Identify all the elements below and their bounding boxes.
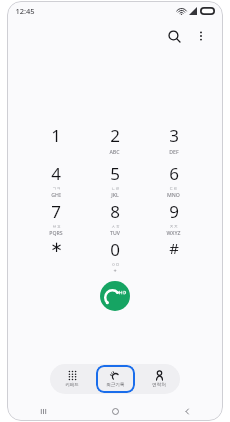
button[interactable]: 7	[27, 199, 85, 237]
staticText: 0	[110, 238, 120, 261]
button[interactable]: #	[144, 237, 203, 275]
button[interactable]: Call	[100, 281, 130, 311]
staticText: 연락처	[152, 382, 166, 388]
button[interactable]: 6	[144, 161, 203, 199]
staticText: DEF	[169, 148, 179, 155]
button[interactable]: 3	[144, 123, 203, 161]
staticText: JKL	[111, 191, 119, 198]
staticText: 4	[51, 162, 61, 185]
staticText: WXYZ	[166, 229, 181, 236]
button[interactable]: Recent apps	[7, 401, 79, 421]
staticText: ∗	[50, 238, 63, 255]
button[interactable]: 5	[85, 161, 144, 199]
button[interactable]: Search	[161, 23, 187, 49]
staticText: ㄴㄹ	[111, 186, 120, 191]
button[interactable]: 키패드	[52, 365, 92, 393]
staticText: #	[169, 238, 179, 258]
button[interactable]: Home	[79, 401, 151, 421]
staticText: ㅇㅁ	[111, 262, 120, 267]
staticText: 3	[169, 124, 179, 147]
staticText: ABC	[109, 148, 120, 155]
staticText: PQRS	[49, 229, 63, 236]
staticText: ㅈㅊ	[169, 224, 178, 229]
button[interactable]: ∗	[27, 237, 85, 275]
button[interactable]: 8	[85, 199, 144, 237]
button[interactable]: 최근기록	[96, 365, 135, 393]
button[interactable]: Back	[151, 401, 223, 421]
staticText: 1	[51, 124, 61, 147]
staticText: +	[113, 267, 117, 274]
staticText: 키패드	[65, 382, 79, 388]
staticText: TUV	[110, 229, 120, 236]
staticText: 최근기록	[106, 382, 125, 388]
button[interactable]: 0	[85, 237, 144, 275]
staticText: 5	[110, 162, 120, 185]
button[interactable]: 9	[144, 199, 203, 237]
button[interactable]: 4	[27, 161, 85, 199]
staticText: 2	[110, 124, 120, 147]
button[interactable]: 2	[85, 123, 144, 161]
staticText: 8	[110, 200, 120, 223]
staticText: ㅂㅍ	[52, 224, 61, 229]
staticText: 12:45	[15, 6, 35, 16]
staticText: ㄷㅌ	[169, 186, 178, 191]
staticText: MNO	[167, 191, 180, 198]
staticText: 6	[169, 162, 179, 185]
button[interactable]: 연락처	[139, 365, 178, 393]
button[interactable]: More options	[189, 24, 213, 48]
button[interactable]: 1	[27, 123, 85, 161]
staticText: 9	[169, 200, 179, 223]
staticText: ㅅㅎ	[111, 224, 120, 229]
staticText: 7	[51, 200, 61, 223]
staticText: GHI	[51, 191, 61, 198]
staticText: ㄱㅋ	[52, 186, 61, 191]
